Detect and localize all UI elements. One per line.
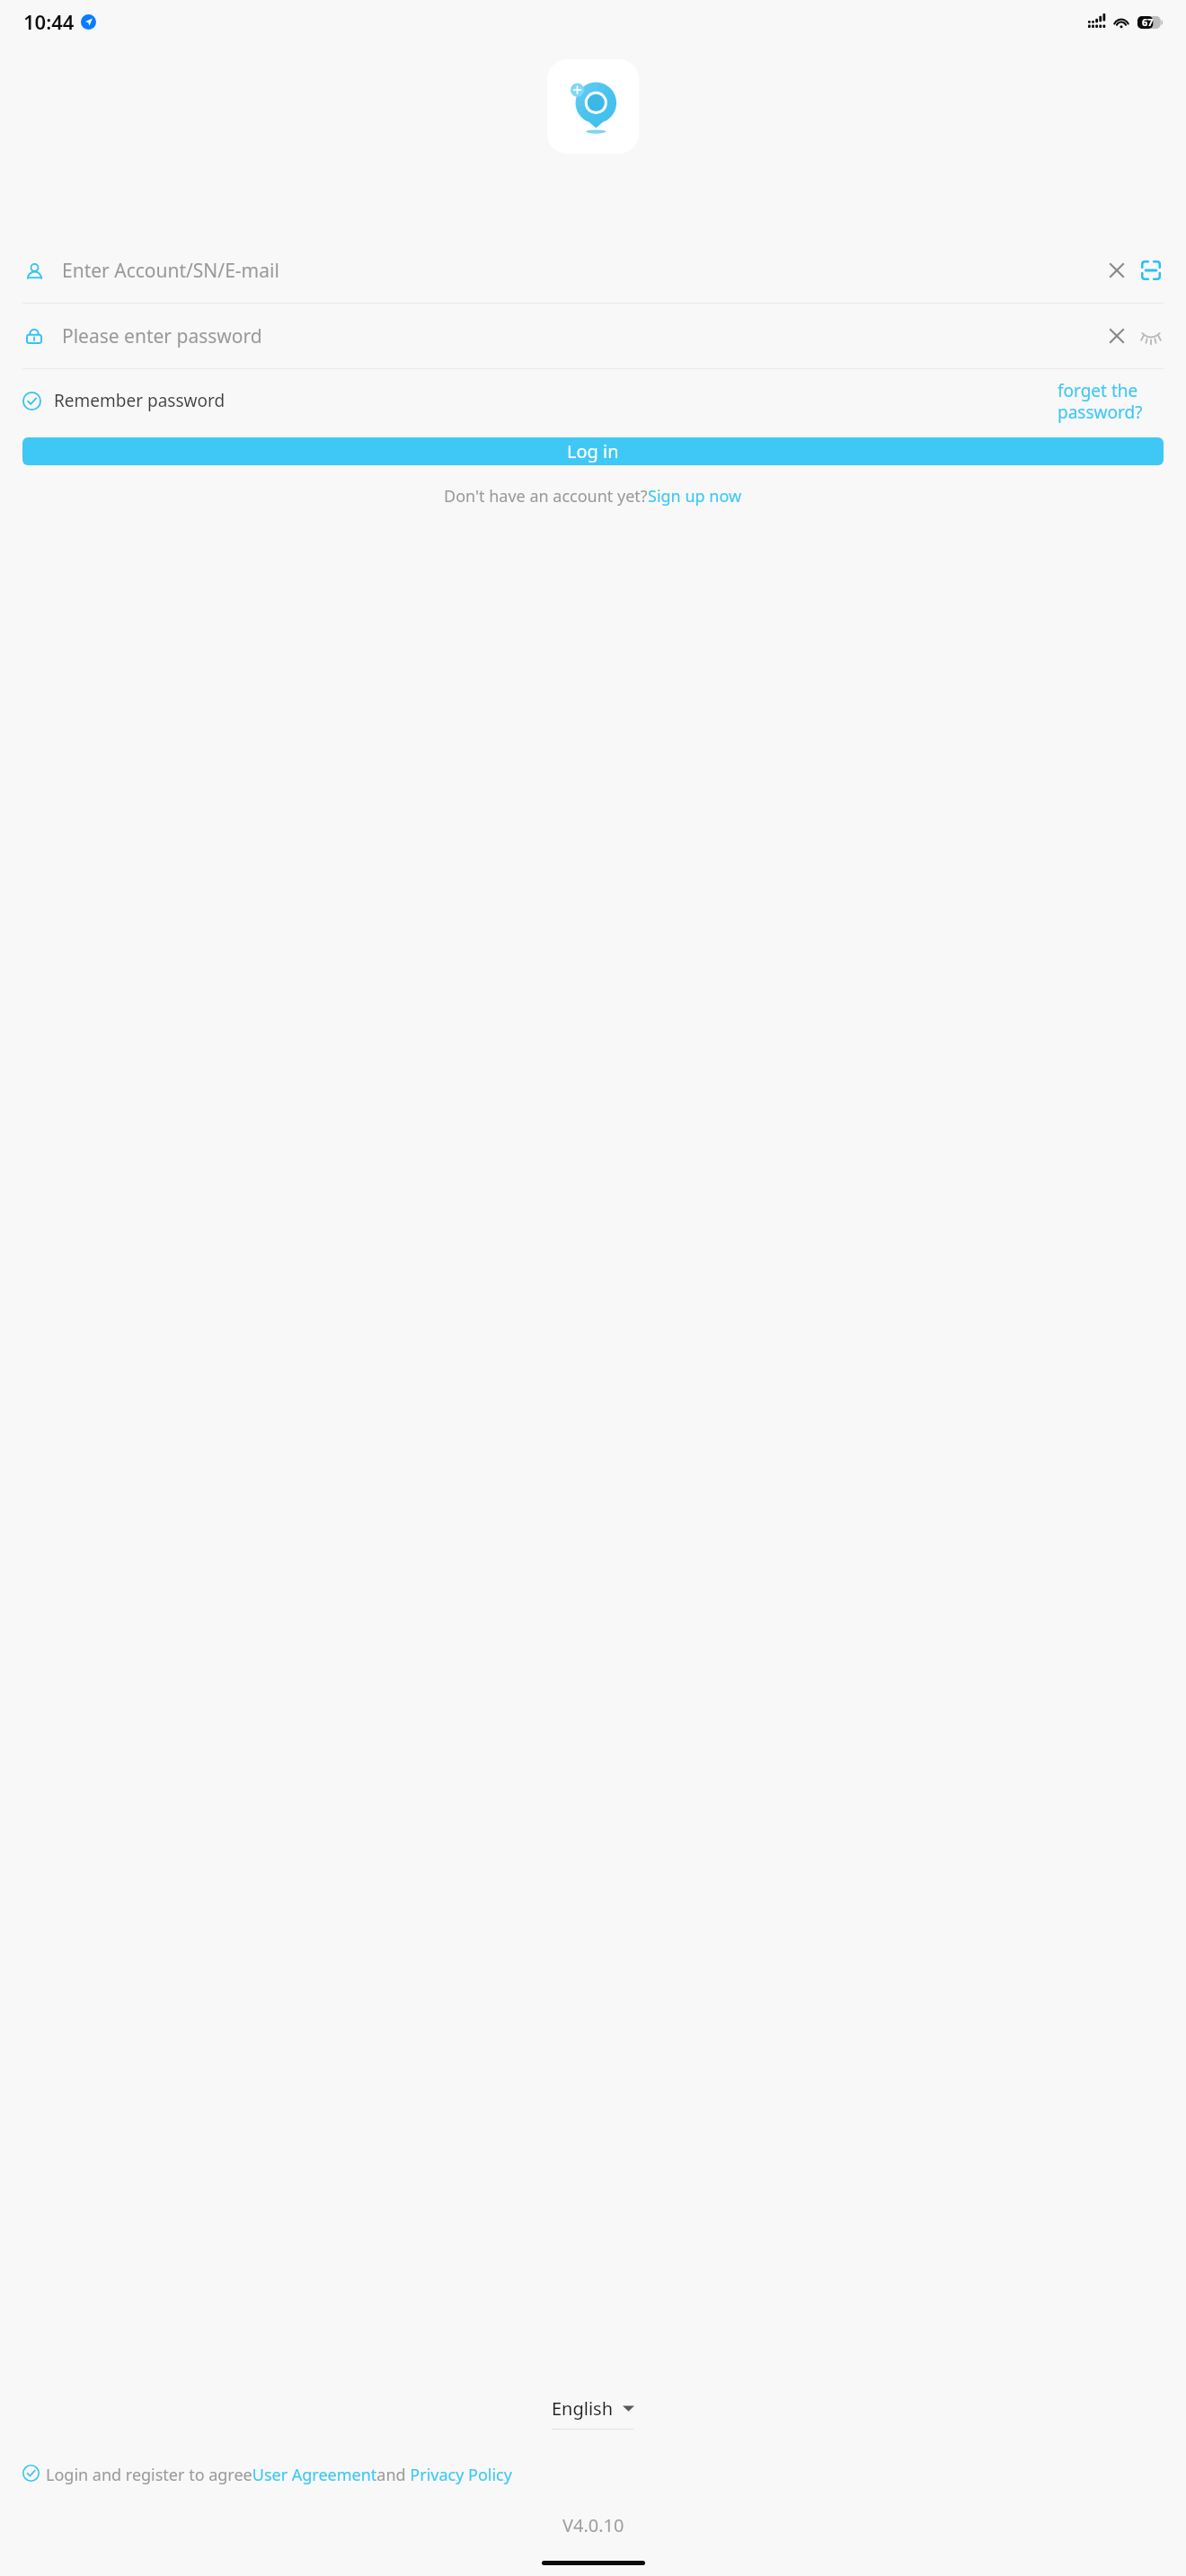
staticText: Log in [567,439,619,463]
staticText: Please enter password [62,323,262,349]
button[interactable]: Please enter password [22,304,1162,368]
staticText: Remember password [54,389,226,412]
staticText: English [552,2396,614,2421]
staticText: Don't have an account yet? [444,485,648,507]
button[interactable]: Clear [1106,325,1128,347]
staticText: Enter Account/SN/E-mail [62,258,279,284]
button[interactable]: Remember password [22,389,1058,412]
button[interactable]: Sign up now [648,485,742,507]
staticText: Login and register to agreeUser Agreemen… [46,2464,512,2486]
button[interactable]: Show password [1140,325,1162,347]
button[interactable]: Enter Account/SN/E-mail [22,238,1162,303]
button[interactable]: Scan code [1140,260,1162,281]
button[interactable]: English [552,2396,634,2421]
staticText: V4.0.10 [562,2513,624,2537]
staticText: 10:44 [23,8,75,35]
button[interactable]: Clear [1106,260,1128,281]
button[interactable]: Log in [22,437,1164,465]
staticText: forget the password? [1058,379,1162,423]
button[interactable]: Agree to terms [22,2465,40,2482]
staticText: 67 [1142,15,1154,29]
button[interactable]: forget the password? [1058,379,1162,423]
staticText: Sign up now [648,485,742,507]
